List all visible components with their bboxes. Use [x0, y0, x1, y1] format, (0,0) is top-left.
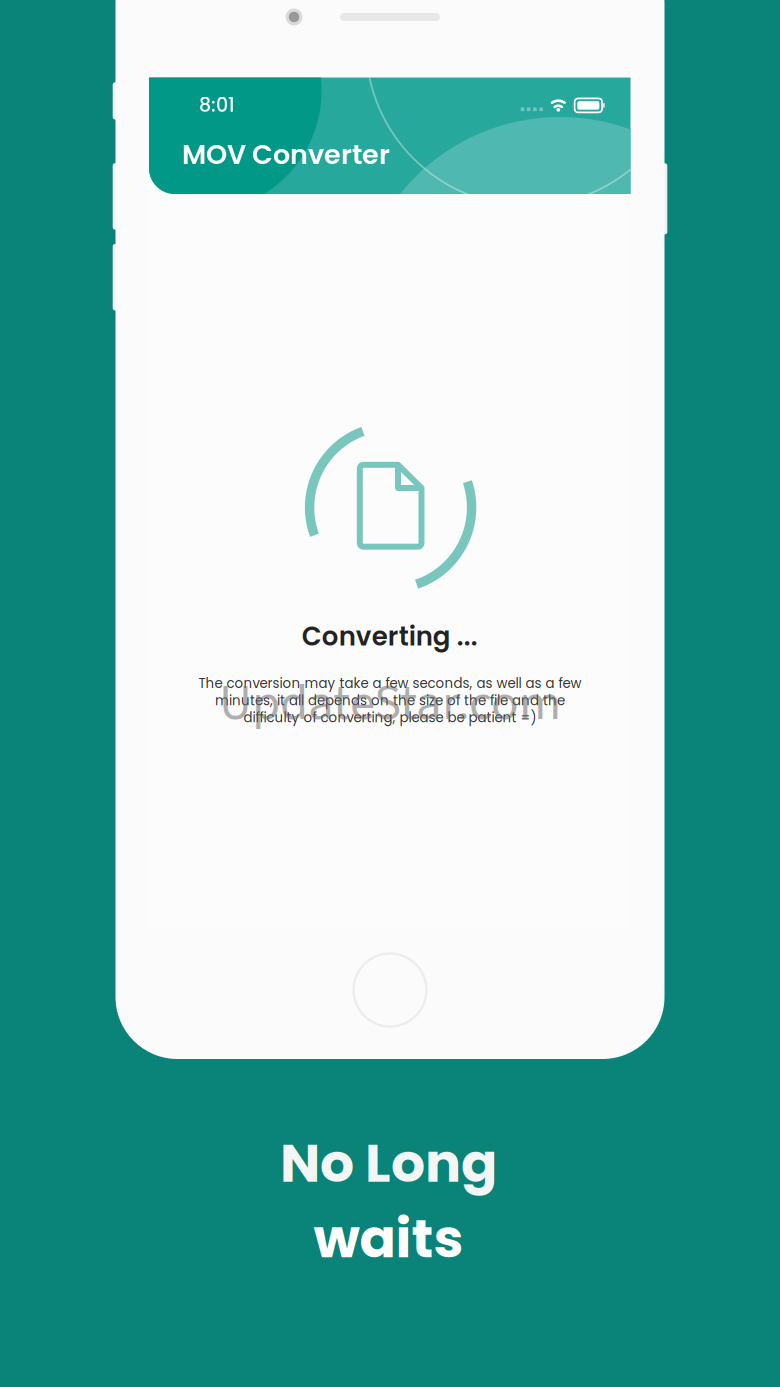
staticText: No Long — [280, 1125, 497, 1200]
staticText: UpdateStar.com — [219, 667, 561, 739]
staticText: Converting ... — [302, 618, 478, 655]
staticText: The conversion may take a few seconds, a… — [198, 674, 581, 727]
staticText: 8:01 — [199, 92, 235, 118]
staticText: MOV Converter — [182, 136, 390, 173]
staticText: waits — [313, 1201, 463, 1276]
